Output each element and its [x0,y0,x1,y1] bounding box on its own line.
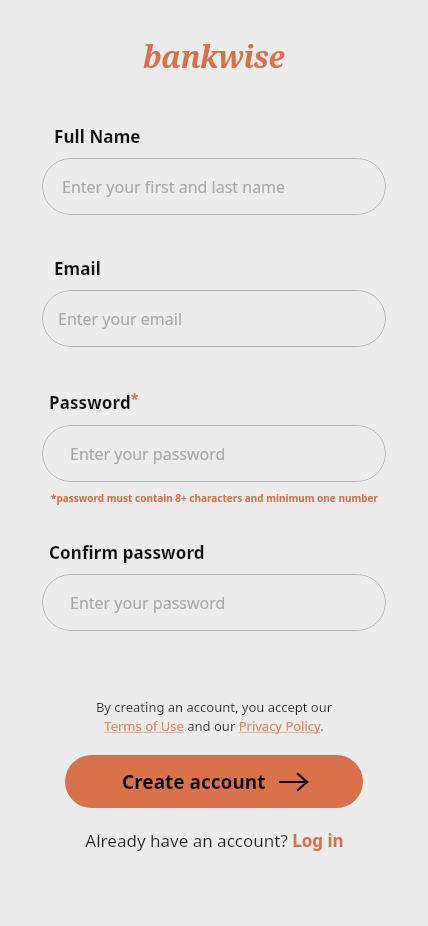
staticText: bankwise [143,36,285,77]
button[interactable]: Create account [65,755,363,808]
staticText: Create account [122,769,266,795]
staticText: Full Name [54,125,141,148]
staticText: Enter your password [70,443,226,465]
staticText: *password must contain 8+ characters and… [51,491,378,505]
button[interactable]: Enter your first and last name [42,158,386,215]
staticText: Email [54,257,101,280]
staticText: Password* [49,389,139,414]
button[interactable]: Enter your password [42,574,386,631]
staticText: Confirm password [49,541,205,564]
staticText: Already have an account? Log in [85,829,344,852]
staticText: By creating an account, you accept our T… [42,698,386,735]
staticText: Enter your password [70,592,226,614]
button[interactable]: Enter your email [42,290,386,347]
staticText: Enter your email [58,308,183,330]
button[interactable]: Already have an account? Log in [42,829,386,852]
button[interactable]: Enter your password [42,425,386,482]
staticText: Enter your first and last name [62,176,286,198]
